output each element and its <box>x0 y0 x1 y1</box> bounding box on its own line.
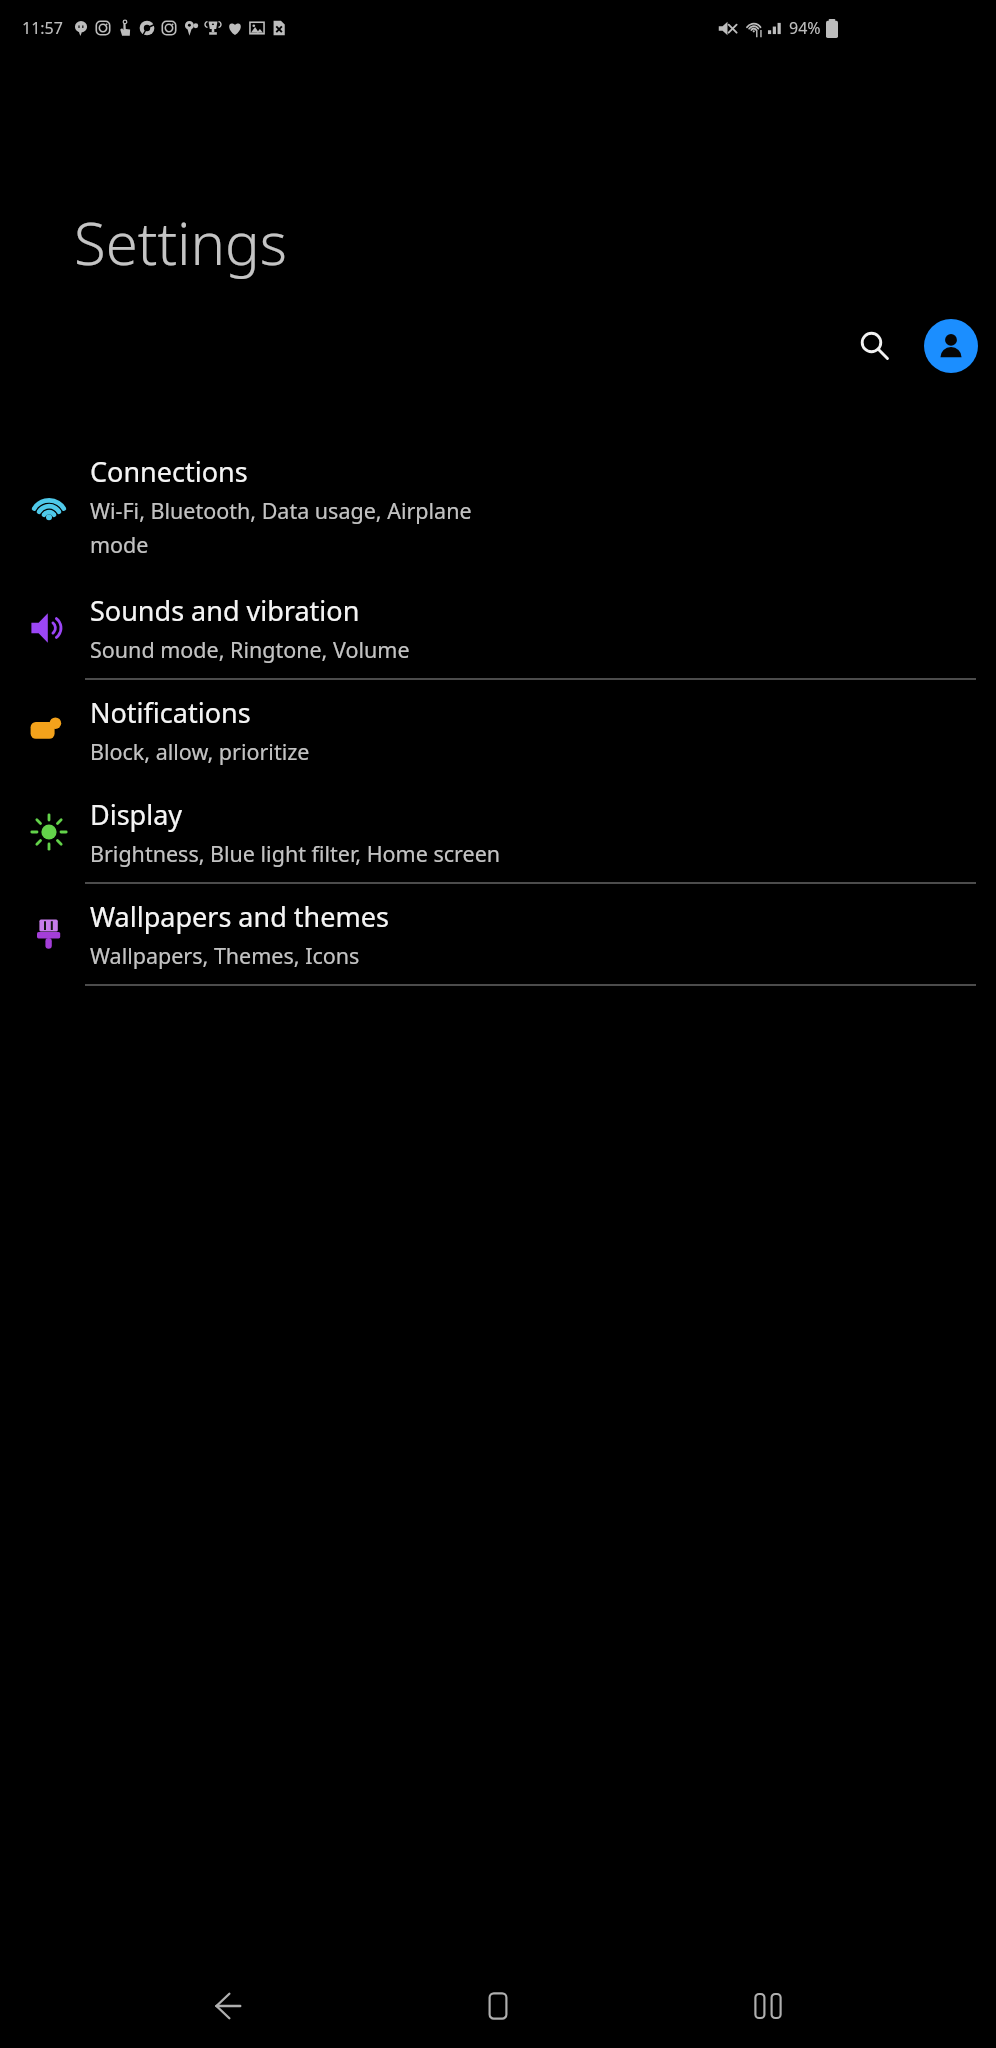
button[interactable]: Notifications <box>0 680 996 780</box>
staticText: 11:57 <box>22 17 63 39</box>
staticText: mode <box>90 530 149 559</box>
staticText: Connections <box>90 453 248 490</box>
staticText: Block, allow, prioritize <box>90 737 310 766</box>
button[interactable]: Account <box>924 319 978 373</box>
staticText: Wi-Fi, Bluetooth, Data usage, Airplane <box>90 496 472 525</box>
button[interactable]: Connections <box>0 436 996 576</box>
staticText: Notifications <box>90 694 251 731</box>
staticText: Sounds and vibration <box>90 592 360 629</box>
staticText: Display <box>90 796 183 833</box>
staticText: Wallpapers and themes <box>90 898 389 935</box>
button[interactable]: Display <box>0 782 996 882</box>
button[interactable]: Wallpapers and themes <box>0 884 996 984</box>
staticText: 94% <box>789 17 821 39</box>
staticText: Wallpapers, Themes, Icons <box>90 941 360 970</box>
button[interactable]: Home <box>456 1964 540 2048</box>
button[interactable]: Recent apps <box>726 1964 810 2048</box>
button[interactable]: Search <box>846 317 904 375</box>
staticText: Brightness, Blue light filter, Home scre… <box>90 839 501 868</box>
staticText: Sound mode, Ringtone, Volume <box>90 635 410 664</box>
button[interactable]: Back <box>186 1964 270 2048</box>
button[interactable]: Sounds and vibration <box>0 578 996 678</box>
staticText: Settings <box>74 203 287 282</box>
